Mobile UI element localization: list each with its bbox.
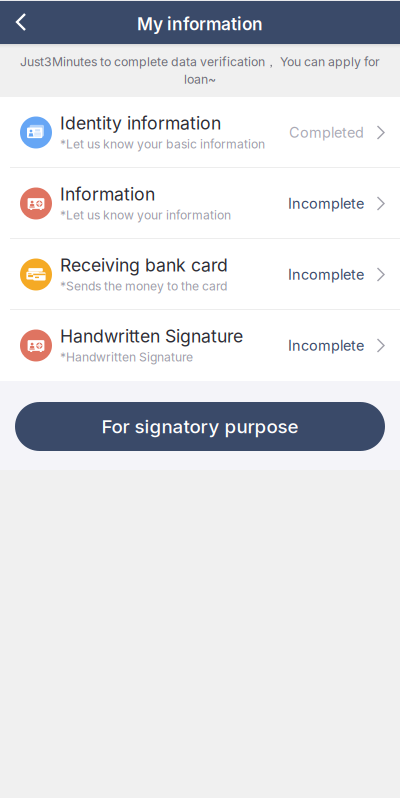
staticText: Just3Minutes to complete data verificati… [20, 54, 380, 70]
staticText: *Sends the money to the card [60, 279, 227, 293]
button[interactable]: For signatory purpose [15, 402, 385, 451]
staticText: loan~ [184, 72, 216, 87]
staticText: *Handwritten Signature [60, 350, 193, 364]
staticText: Identity information [60, 112, 221, 134]
staticText: Completed [289, 124, 364, 141]
staticText: Information [60, 183, 155, 205]
staticText: Receiving bank card [60, 254, 228, 276]
staticText: *Let us know your information [60, 208, 231, 222]
staticText: For signatory purpose [101, 415, 298, 438]
button[interactable]: Receiving bank card [0, 239, 400, 310]
staticText: My information [137, 14, 263, 34]
staticText: Incomplete [288, 266, 364, 283]
staticText: *Let us know your basic information [60, 137, 265, 151]
button[interactable]: Identity information [0, 97, 400, 168]
button[interactable]: Handwritten Signature [0, 310, 400, 381]
staticText: Handwritten Signature [60, 325, 243, 347]
staticText: Incomplete [288, 337, 364, 354]
button[interactable]: Information [0, 168, 400, 239]
button[interactable]: Back [0, 0, 42, 44]
staticText: Incomplete [288, 195, 364, 212]
